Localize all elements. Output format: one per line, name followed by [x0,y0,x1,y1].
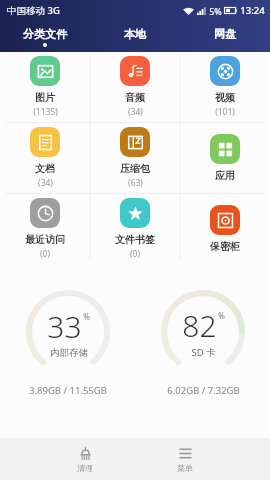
staticText: 本地 [124,27,146,41]
staticText: 中国移动 3G [7,4,60,17]
button[interactable]: 应用 [180,122,270,193]
staticText: 图片 [35,91,55,104]
staticText: 3.89GB / 11.55GB [29,384,107,397]
staticText: 文档 [35,162,55,175]
staticText: 分类文件 [23,27,67,41]
button[interactable]: 音频 [90,52,180,122]
staticText: (0) [130,248,140,260]
button[interactable]: 网盘 [180,21,270,52]
button[interactable]: 分类文件 [0,21,90,52]
staticText: SD 卡 [191,346,216,359]
button[interactable]: 视频 [180,52,270,122]
staticText: 网盘 [214,27,236,41]
staticText: 视频 [215,91,235,104]
staticText: 压缩包 [120,162,150,175]
button[interactable]: 最近访问 [0,193,90,264]
staticText: (34) [38,177,53,189]
staticText: 33 [47,306,82,347]
button[interactable]: 本地 [90,21,180,52]
staticText: (34) [128,106,143,118]
staticText: 清理 [77,463,93,473]
staticText: 6.02GB / 7.32GB [167,384,240,397]
staticText: 应用 [215,169,235,182]
staticText: 音频 [125,91,145,104]
button[interactable]: 保密柜 [180,193,270,264]
staticText: % [83,311,90,322]
staticText: (63) [128,177,143,189]
staticText: 菜单 [177,463,193,473]
button[interactable]: 清理 [56,446,114,473]
staticText: 保密柜 [210,240,240,253]
button[interactable]: 图片 [0,52,90,122]
button[interactable]: 文件书签 [90,193,180,264]
staticText: (0) [40,248,50,260]
staticText: (1135) [33,106,58,118]
button[interactable]: 压缩包 [90,122,180,193]
staticText: 文件书签 [115,233,155,246]
staticText: 内部存储 [50,347,88,359]
staticText: 82 [182,305,217,346]
staticText: (101) [215,106,235,118]
button[interactable]: 文档 [0,122,90,193]
staticText: 13:24 [240,4,265,17]
staticText: 最近访问 [25,233,65,246]
staticText: 5% [209,5,222,17]
staticText: % [218,310,225,321]
button[interactable]: 菜单 [156,446,214,473]
